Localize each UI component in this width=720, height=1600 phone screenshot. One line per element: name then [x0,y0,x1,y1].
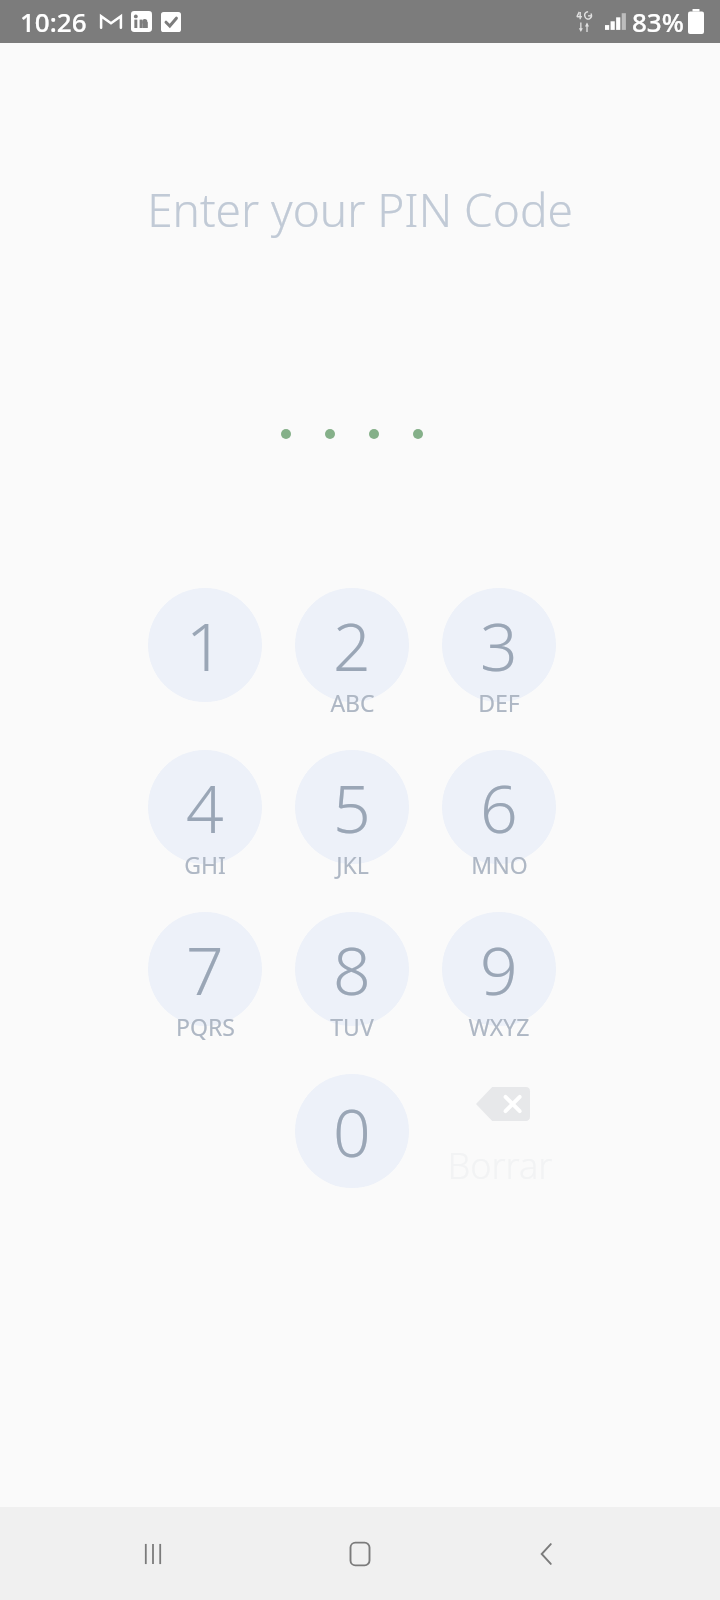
button[interactable]: Back [511,1518,583,1590]
button[interactable]: 1 [148,588,262,702]
button[interactable]: 7 [148,912,262,1026]
button[interactable]: 0 [295,1074,409,1188]
staticText: DEF [478,687,520,718]
staticText: JKL [336,849,369,880]
staticText: 7 [186,924,224,1014]
staticText: 4 [186,762,224,852]
staticText: 2 [333,600,371,690]
staticText: PQRS [176,1011,235,1042]
staticText: MNO [471,849,528,880]
staticText: WXYZ [468,1011,530,1042]
button[interactable]: Home [324,1518,396,1590]
button[interactable]: Borrar [443,1075,557,1189]
staticText: Enter your PIN Code [147,178,573,241]
staticText: 0 [333,1086,371,1176]
button[interactable]: 6 [442,750,556,864]
button[interactable]: 9 [442,912,556,1026]
button[interactable]: 8 [295,912,409,1026]
staticText: 5 [333,762,371,852]
staticText: 1 [186,600,224,690]
button[interactable]: Recent apps [117,1518,189,1590]
staticText: TUV [330,1011,374,1042]
staticText: 10:26 [20,4,87,39]
staticText: 8 [333,924,371,1014]
staticText: 3 [480,600,518,690]
button[interactable]: 3 [442,588,556,702]
button[interactable]: 5 [295,750,409,864]
staticText: 83% [632,4,684,39]
staticText: 9 [480,924,518,1014]
staticText: ABC [330,687,375,718]
staticText: GHI [184,849,226,880]
button[interactable]: 4 [148,750,262,864]
button[interactable]: 2 [295,588,409,702]
staticText: 6 [480,762,518,852]
